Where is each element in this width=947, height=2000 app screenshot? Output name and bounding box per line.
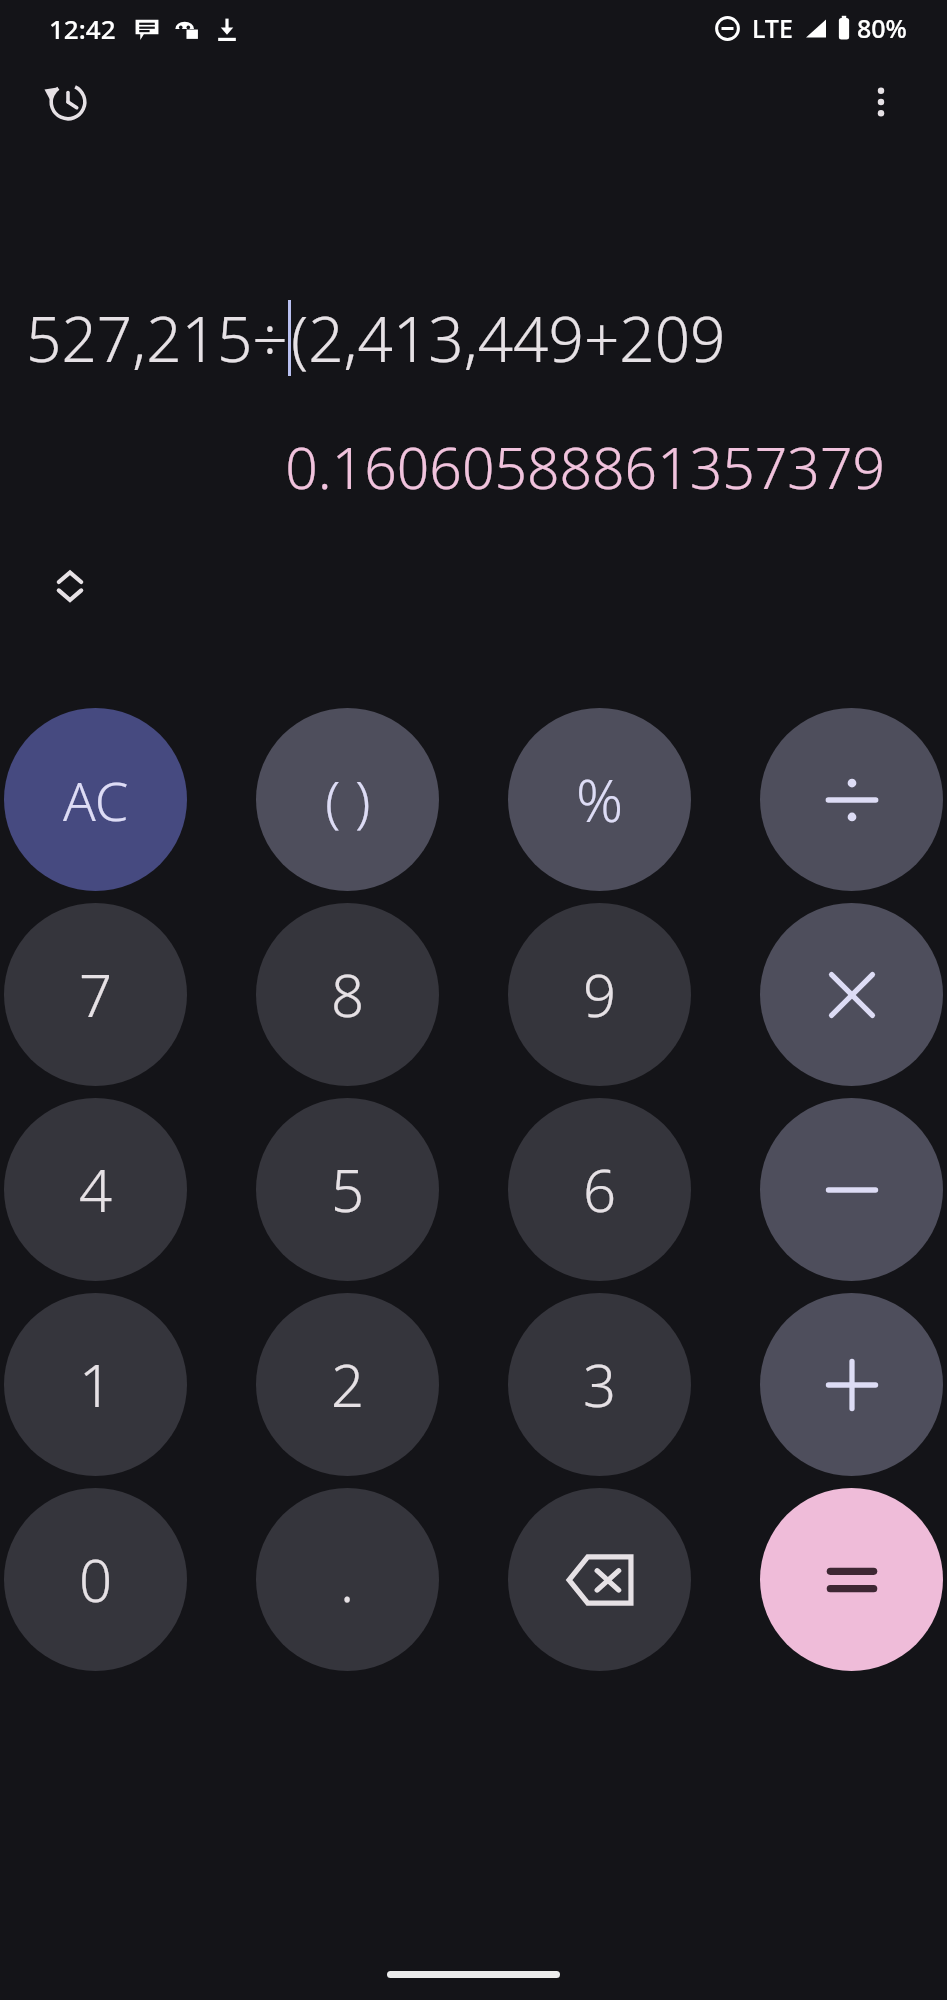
staticText: 2 [331, 1345, 365, 1424]
button[interactable]: History [32, 66, 104, 138]
button[interactable]: 0 [4, 1488, 187, 1671]
staticText: 9 [583, 955, 617, 1034]
button[interactable]: Expand result [34, 550, 106, 622]
button[interactable]: 1 [4, 1293, 187, 1476]
button[interactable]: 6 [508, 1098, 691, 1281]
staticText: LTE [752, 11, 793, 45]
button[interactable]: . [256, 1488, 439, 1671]
button[interactable] [760, 903, 943, 1086]
staticText: (2,413,449+209 [291, 296, 726, 380]
button[interactable]: % [508, 708, 691, 891]
button[interactable]: 5 [256, 1098, 439, 1281]
button[interactable]: 4 [4, 1098, 187, 1281]
staticText: % [576, 760, 624, 839]
button[interactable] [760, 708, 943, 891]
staticText: 80% [857, 11, 907, 45]
staticText: 3 [583, 1345, 617, 1424]
button[interactable]: ( ) [256, 708, 439, 891]
staticText: 4 [79, 1150, 113, 1229]
button[interactable]: 3 [508, 1293, 691, 1476]
staticText: 5 [331, 1150, 365, 1229]
button[interactable] [760, 1488, 943, 1671]
staticText: 0.16060588861357379 [285, 428, 885, 506]
button[interactable]: Backspace [508, 1488, 691, 1671]
staticText: 8 [331, 955, 365, 1034]
button[interactable]: More options [845, 66, 917, 138]
staticText: 527,215÷ [26, 296, 288, 380]
button[interactable]: 7 [4, 903, 187, 1086]
staticText: . [340, 1540, 355, 1619]
staticText: 7 [79, 955, 113, 1034]
button[interactable]: 9 [508, 903, 691, 1086]
button[interactable] [760, 1293, 943, 1476]
staticText: 0 [79, 1540, 113, 1619]
staticText: ( ) [325, 762, 371, 838]
staticText: 6 [583, 1150, 617, 1229]
button[interactable] [760, 1098, 943, 1281]
staticText: 12:42 [49, 11, 116, 46]
staticText: AC [63, 763, 129, 837]
button[interactable]: 2 [256, 1293, 439, 1476]
staticText: 1 [79, 1345, 113, 1424]
button[interactable]: AC [4, 708, 187, 891]
button[interactable]: 8 [256, 903, 439, 1086]
